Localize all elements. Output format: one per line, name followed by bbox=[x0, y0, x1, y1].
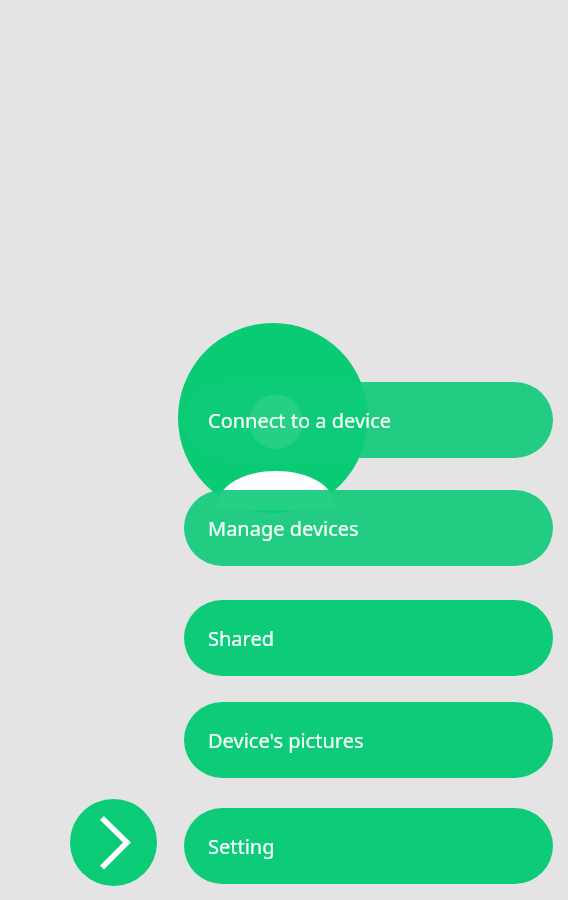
button[interactable]: Next bbox=[70, 799, 157, 886]
staticText: Shared bbox=[208, 625, 274, 652]
staticText: Setting bbox=[208, 833, 275, 860]
button[interactable]: Manage devices bbox=[184, 490, 553, 566]
staticText: Connect to a device bbox=[208, 407, 392, 434]
button[interactable]: Device's pictures bbox=[184, 702, 553, 778]
button[interactable]: Setting bbox=[184, 808, 553, 884]
staticText: Manage devices bbox=[208, 515, 359, 542]
button[interactable]: Connect to a device bbox=[184, 382, 553, 458]
button[interactable]: Shared bbox=[184, 600, 553, 676]
staticText: Device's pictures bbox=[208, 727, 364, 754]
